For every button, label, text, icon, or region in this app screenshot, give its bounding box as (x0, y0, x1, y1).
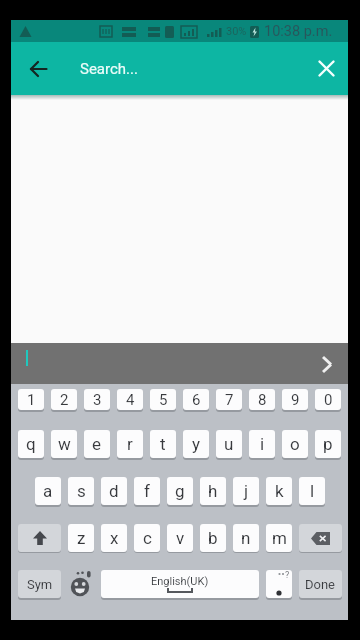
button[interactable]: p (315, 430, 341, 458)
staticText: c (143, 528, 152, 548)
staticText: Sym (27, 577, 53, 592)
button[interactable]: h (200, 477, 226, 505)
button[interactable]: m (266, 524, 292, 552)
button[interactable]: r (117, 430, 143, 458)
staticText: 4 (126, 391, 135, 409)
staticText: 9 (291, 391, 300, 409)
button[interactable] (22, 52, 55, 85)
button[interactable]: 3 (84, 389, 110, 410)
staticText: y (192, 434, 201, 454)
staticText: ? (285, 570, 290, 581)
staticText: 5 (159, 391, 168, 409)
staticText: j (244, 481, 249, 501)
staticText: f (144, 481, 150, 501)
button[interactable]: l (299, 477, 325, 505)
button[interactable]: c (134, 524, 160, 552)
button[interactable] (18, 524, 61, 552)
button[interactable] (11, 343, 348, 384)
button[interactable]: 7 (216, 389, 242, 410)
staticText: Done (305, 577, 336, 592)
button[interactable]: j (233, 477, 259, 505)
button[interactable]: 1 (18, 389, 44, 410)
button[interactable]: x (101, 524, 127, 552)
button[interactable]: e (84, 430, 110, 458)
staticText: 10:38 p.m. (264, 23, 333, 40)
staticText: 2 (60, 391, 69, 409)
button[interactable]: 4 (117, 389, 143, 410)
button[interactable]: v (167, 524, 193, 552)
staticText: e (92, 434, 102, 454)
staticText: b (208, 528, 218, 548)
button[interactable]: 2 (51, 389, 77, 410)
staticText: q (26, 434, 36, 454)
button[interactable]: g (167, 477, 193, 505)
button[interactable]: ? (266, 570, 292, 598)
button[interactable]: b (200, 524, 226, 552)
staticText: w (58, 434, 71, 454)
button[interactable] (299, 524, 342, 552)
staticText: n (241, 528, 251, 548)
staticText: g (175, 481, 185, 501)
button[interactable]: 0 (315, 389, 341, 410)
staticText: 30% (226, 25, 247, 38)
button[interactable]: q (18, 430, 44, 458)
staticText: a (43, 481, 53, 501)
button[interactable]: 5 (150, 389, 176, 410)
button[interactable]: 9 (282, 389, 308, 410)
button[interactable]: s (68, 477, 94, 505)
button[interactable]: Done (299, 570, 342, 598)
staticText: 6 (192, 391, 201, 409)
button[interactable]: u (216, 430, 242, 458)
button[interactable]: i (249, 430, 275, 458)
button[interactable]: d (101, 477, 127, 505)
button[interactable]: 8 (249, 389, 275, 410)
button[interactable]: k (266, 477, 292, 505)
staticText: d (109, 481, 119, 501)
staticText: x (110, 528, 119, 548)
staticText: 1 (27, 391, 36, 409)
staticText: o (290, 434, 300, 454)
staticText: z (77, 528, 86, 548)
staticText: l (310, 481, 315, 501)
button[interactable]: w (51, 430, 77, 458)
staticText: h (208, 481, 218, 501)
staticText: s (77, 481, 86, 501)
button[interactable]: o (282, 430, 308, 458)
button[interactable]: Sym (18, 570, 61, 598)
button[interactable]: Search... (80, 60, 138, 78)
staticText: English(UK) (151, 575, 209, 588)
button[interactable] (315, 352, 339, 376)
staticText: i (260, 434, 265, 454)
staticText: m (272, 528, 287, 548)
staticText: t (160, 434, 166, 454)
staticText: k (275, 481, 284, 501)
staticText: r (127, 434, 133, 454)
button[interactable]: z (68, 524, 94, 552)
staticText: p (323, 434, 333, 454)
staticText: 7 (225, 391, 234, 409)
button[interactable]: English(UK) (101, 570, 259, 598)
staticText: 0 (324, 391, 333, 409)
button[interactable]: n (233, 524, 259, 552)
button[interactable]: 6 (183, 389, 209, 410)
staticText: u (224, 434, 234, 454)
button[interactable] (310, 52, 343, 85)
staticText: v (176, 528, 185, 548)
staticText: 3 (93, 391, 102, 409)
button[interactable]: f (134, 477, 160, 505)
button[interactable]: a (35, 477, 61, 505)
button[interactable] (68, 570, 94, 598)
button[interactable]: t (150, 430, 176, 458)
button[interactable]: y (183, 430, 209, 458)
staticText: 8 (258, 391, 267, 409)
